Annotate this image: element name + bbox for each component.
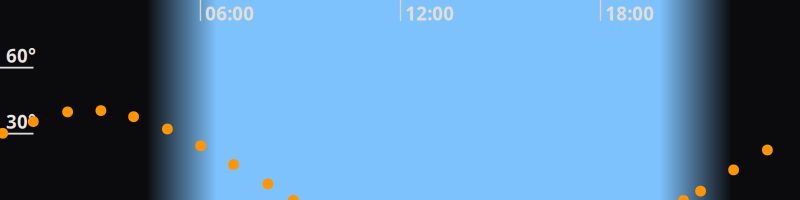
staticText: 18:00 [605,1,654,26]
staticText: 06:00 [205,1,254,26]
staticText: 12:00 [405,1,454,26]
staticText: 30° [6,109,36,134]
staticText: 60° [6,43,36,68]
